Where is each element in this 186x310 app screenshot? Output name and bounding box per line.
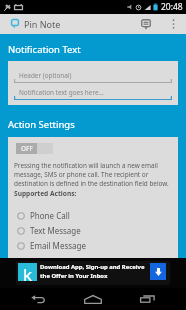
- button[interactable]: OFF: [16, 143, 53, 154]
- staticText: Notification Text: [8, 43, 81, 56]
- staticText: OFF: [21, 144, 33, 153]
- staticText: Text Message: [30, 225, 81, 236]
- button[interactable]: App icon: [7, 14, 23, 34]
- button[interactable]: Text Message: [8, 223, 178, 238]
- button[interactable]: k: [0, 258, 186, 288]
- staticText: Notification text goes here...: [19, 88, 104, 97]
- button[interactable]: Header (optional): [14, 70, 172, 86]
- staticText: Download App, Sign-up and Receive the Of…: [40, 263, 148, 280]
- button[interactable]: Home: [78, 288, 108, 310]
- button[interactable]: Email Message: [8, 238, 178, 253]
- staticText: 20:48: [161, 1, 183, 13]
- staticText: Header (optional): [19, 71, 72, 80]
- staticText: k: [23, 263, 33, 281]
- staticText: Pin Note: [24, 18, 61, 30]
- staticText: Action Settings: [8, 118, 75, 131]
- button[interactable]: Recents: [132, 288, 162, 310]
- button[interactable]: Back: [23, 288, 53, 310]
- button[interactable]: Phone Call: [8, 208, 178, 223]
- staticText: Pressing the notification will launch a …: [14, 161, 172, 188]
- button[interactable]: Download: [150, 263, 166, 280]
- staticText: Email Message: [30, 240, 86, 251]
- button[interactable]: Messages: [136, 14, 156, 34]
- staticText: Supported Actions:: [14, 189, 77, 198]
- staticText: Phone Call: [30, 210, 70, 221]
- button[interactable]: More options: [164, 14, 182, 34]
- button[interactable]: Notification text goes here...: [14, 87, 172, 103]
